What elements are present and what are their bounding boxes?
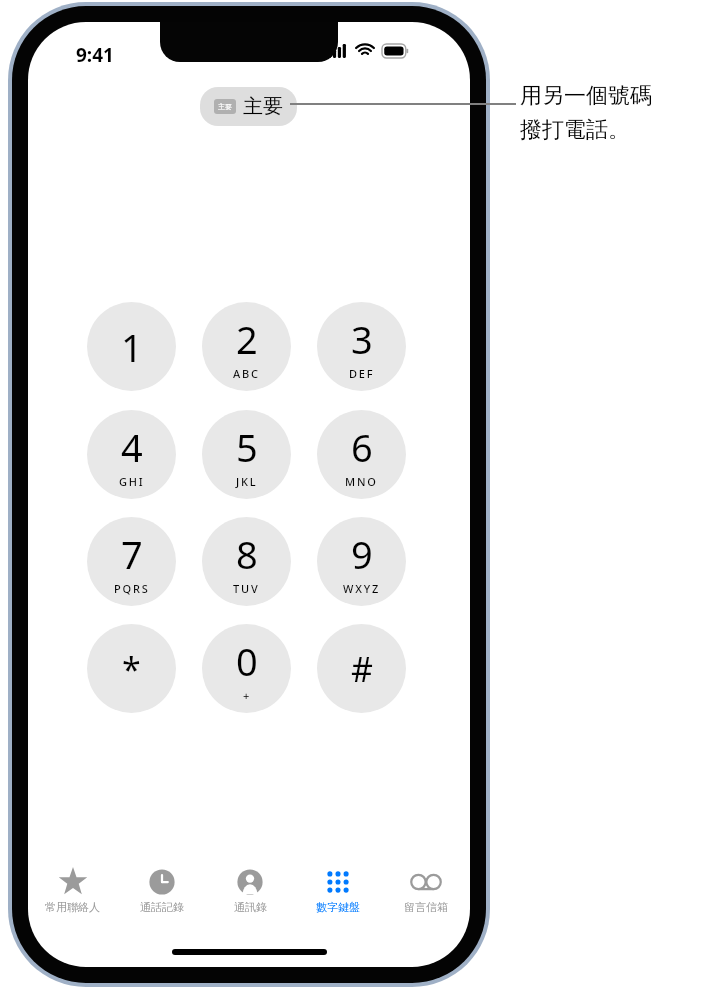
staticText: 0 (236, 635, 258, 687)
button[interactable]: 常用聯絡人 (28, 867, 117, 914)
staticText: 3 (351, 313, 373, 365)
button[interactable]: 3 (317, 302, 406, 391)
staticText: 留言信箱 (404, 900, 448, 914)
button[interactable]: 通話記錄 (117, 867, 206, 914)
staticText: TUV (233, 581, 260, 596)
staticText: GHI (119, 474, 145, 489)
button[interactable]: 通訊錄 (206, 867, 294, 914)
staticText: 9:41 (76, 42, 114, 68)
staticText: 撥打電話。 (520, 116, 630, 144)
button[interactable]: 留言信箱 (382, 867, 470, 914)
staticText: WXYZ (343, 581, 381, 596)
staticText: 2 (236, 313, 258, 365)
staticText: JKL (236, 474, 258, 489)
button[interactable]: 0 (202, 624, 291, 713)
staticText: * (122, 646, 141, 692)
staticText: # (351, 646, 373, 692)
button[interactable]: 數字鍵盤 (294, 867, 382, 914)
staticText: 數字鍵盤 (316, 900, 360, 914)
staticText: 通話記錄 (140, 900, 184, 914)
staticText: PQRS (114, 581, 150, 596)
button[interactable]: # (317, 624, 406, 713)
button[interactable]: 7 (87, 517, 176, 606)
staticText: 6 (351, 421, 373, 473)
staticText: 9 (351, 528, 373, 580)
staticText: 常用聯絡人 (45, 900, 100, 914)
button[interactable]: 9 (317, 517, 406, 606)
staticText: DEF (349, 366, 375, 381)
button[interactable]: * (87, 624, 176, 713)
staticText: 主要 (243, 94, 283, 119)
staticText: 用另一個號碼 (520, 82, 652, 110)
staticText: 1 (121, 321, 143, 373)
button[interactable]: 主要 (200, 87, 297, 126)
button[interactable]: 4 (87, 410, 176, 499)
staticText: + (243, 688, 252, 703)
staticText: 8 (236, 528, 258, 580)
button[interactable]: 5 (202, 410, 291, 499)
button[interactable]: 8 (202, 517, 291, 606)
staticText: MNO (345, 474, 378, 489)
staticText: 通訊錄 (234, 900, 267, 914)
button[interactable]: 2 (202, 302, 291, 391)
button[interactable]: 6 (317, 410, 406, 499)
staticText: 4 (121, 421, 143, 473)
staticText: 5 (236, 421, 258, 473)
staticText: ABC (233, 366, 260, 381)
staticText: 主要 (218, 102, 232, 111)
button[interactable]: 1 (87, 302, 176, 391)
staticText: 7 (121, 528, 143, 580)
